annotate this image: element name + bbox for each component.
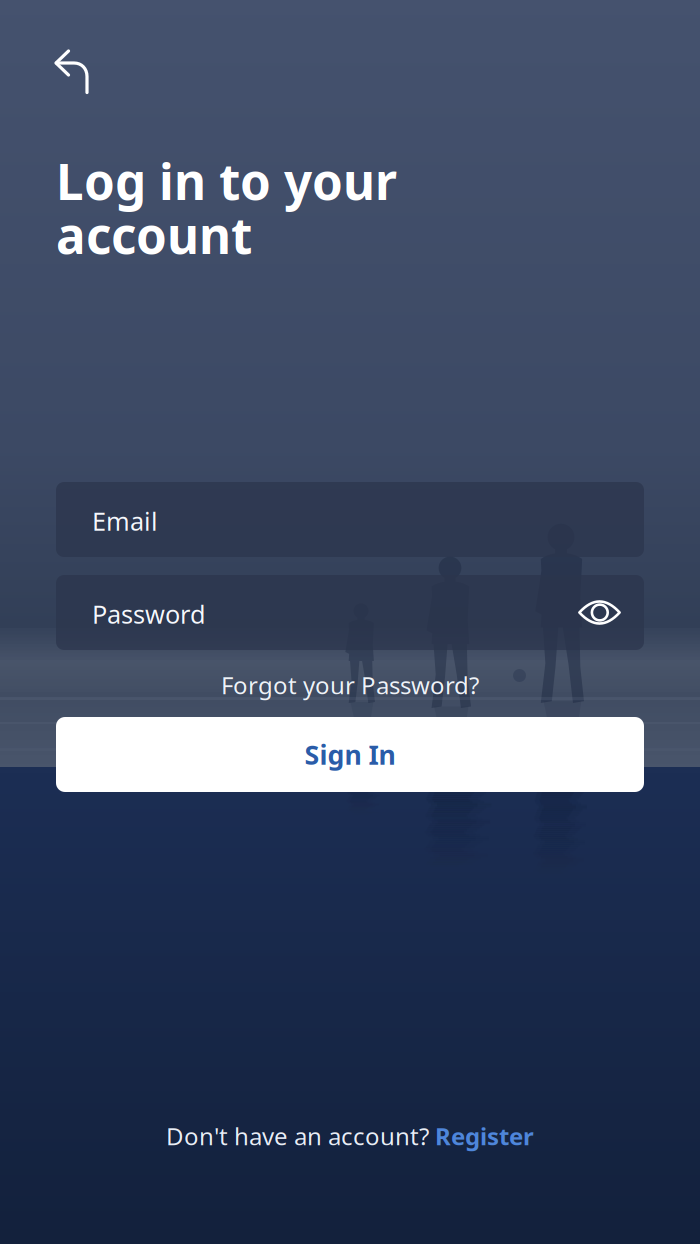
staticText: Email bbox=[92, 504, 158, 538]
button[interactable]: Email bbox=[56, 482, 644, 557]
staticText: Log in to your bbox=[56, 148, 397, 213]
staticText: Register bbox=[435, 1120, 534, 1152]
staticText: Password bbox=[92, 597, 206, 631]
staticText: Sign In bbox=[304, 737, 395, 772]
button[interactable]: Forgot your Password? bbox=[56, 663, 644, 707]
staticText: Forgot your Password? bbox=[221, 669, 479, 701]
staticText: Don't have an account? bbox=[166, 1120, 435, 1152]
button[interactable]: Password bbox=[56, 575, 644, 650]
staticText: account bbox=[56, 202, 252, 267]
button[interactable]: Sign In bbox=[56, 717, 644, 792]
button[interactable]: Back bbox=[40, 30, 112, 104]
button[interactable]: Register bbox=[435, 1120, 534, 1152]
